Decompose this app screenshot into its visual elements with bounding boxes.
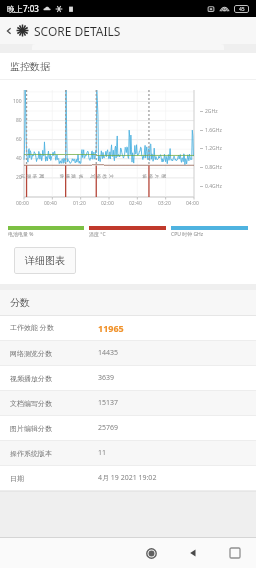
staticText: SCORE DETAILS: [34, 23, 121, 39]
button[interactable]: Recents: [214, 538, 256, 568]
staticText: 网络测览分数: [10, 349, 52, 358]
button[interactable]: 图片编辑分数: [0, 416, 256, 440]
button[interactable]: 日期: [0, 466, 256, 490]
button[interactable]: 视频播放分数: [0, 366, 256, 390]
staticText: 02:40: [129, 200, 142, 207]
staticText: 监控数据: [10, 60, 50, 73]
staticText: 文档编写: [90, 174, 114, 182]
staticText: 视频播放: [59, 174, 83, 182]
staticText: CPU 时钟 GHz: [171, 231, 204, 238]
staticText: 电池电量 %: [8, 231, 34, 238]
button[interactable]: 详细图表: [14, 247, 76, 274]
staticText: 100: [13, 98, 22, 105]
button[interactable]: 网络测览分数: [0, 341, 256, 365]
staticText: 1.6GHz: [205, 127, 222, 134]
staticText: 00:00: [16, 200, 29, 207]
staticText: 详细图表: [25, 254, 65, 267]
staticText: 图片编辑分数: [10, 424, 52, 433]
staticText: 温度 °C: [89, 231, 106, 238]
staticText: 2GHz: [205, 108, 218, 115]
staticText: 15137: [98, 398, 119, 408]
staticText: 45: [239, 6, 245, 13]
staticText: 02:00: [101, 200, 114, 207]
staticText: 晚上7:03: [7, 3, 39, 14]
button[interactable]: Back: [2, 17, 16, 44]
staticText: 14435: [98, 348, 119, 358]
staticText: 00:40: [44, 200, 57, 207]
button[interactable]: Back: [172, 538, 214, 568]
staticText: 0.4GHz: [205, 183, 222, 190]
staticText: 11: [98, 448, 107, 458]
button[interactable]: Home: [130, 538, 172, 568]
staticText: 日期: [10, 474, 24, 483]
button[interactable]: 操作系统版本: [0, 441, 256, 465]
staticText: 4月 19 2021 19:02: [98, 473, 157, 483]
staticText: 01:20: [73, 200, 86, 207]
staticText: 分数: [10, 296, 30, 309]
staticText: 工作效能 分数: [10, 323, 54, 333]
staticText: 40: [16, 155, 22, 162]
staticText: 0.8GHz: [205, 164, 222, 171]
staticText: 视频播放分数: [10, 374, 52, 383]
button[interactable]: 文档编写分数: [0, 391, 256, 415]
staticText: 03:20: [158, 200, 171, 207]
staticText: 11965: [98, 322, 124, 334]
staticText: 文档编写分数: [10, 399, 52, 408]
button[interactable]: 工作效能 分数: [0, 316, 256, 340]
staticText: 80: [16, 117, 22, 124]
staticText: 3639: [98, 373, 115, 383]
staticText: 25769: [98, 423, 119, 433]
staticText: 1.2GHz: [205, 145, 222, 152]
staticText: 04:00: [186, 200, 199, 207]
staticText: 操作系统版本: [10, 449, 52, 458]
staticText: 60: [16, 136, 22, 143]
staticText: 网络测试: [20, 174, 44, 182]
staticText: 20: [16, 174, 22, 181]
staticText: 图片编辑: [142, 174, 166, 182]
